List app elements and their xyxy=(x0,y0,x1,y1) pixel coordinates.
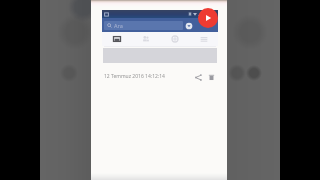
button[interactable]: Share xyxy=(193,72,203,82)
button[interactable]: Tab 1 xyxy=(102,32,131,46)
button[interactable]: Tab 4 xyxy=(189,32,218,46)
button[interactable]: Messenger xyxy=(184,21,193,30)
staticText: Ara xyxy=(114,22,123,29)
button[interactable]: Delete xyxy=(206,72,216,82)
button[interactable]: Tab 2 xyxy=(131,32,160,46)
button[interactable]: Play video xyxy=(198,8,218,28)
staticText: 12 Temmuz 2016 14:12:14 xyxy=(104,73,165,80)
button[interactable]: Tab 3 xyxy=(160,32,189,46)
staticText: 14:12 xyxy=(203,11,215,17)
button[interactable]: Ara xyxy=(104,21,183,30)
